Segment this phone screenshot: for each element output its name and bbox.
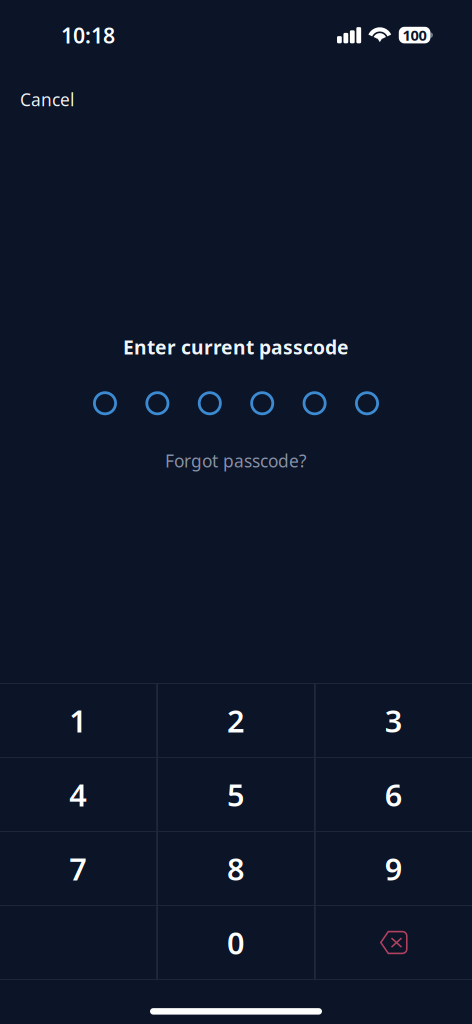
button[interactable]: 4 [0,758,156,831]
button[interactable]: 3 [316,684,472,757]
button[interactable]: 9 [316,832,472,905]
staticText: 0 [227,922,245,963]
staticText: 8 [227,848,245,889]
staticText: 3 [385,700,403,741]
button[interactable]: 1 [0,684,156,757]
button[interactable]: 6 [316,758,472,831]
staticText: 1 [69,700,87,741]
staticText: 100 [403,25,427,45]
staticText: Cancel [20,88,74,111]
button[interactable]: 7 [0,832,156,905]
staticText: Enter current passcode [123,334,349,360]
button[interactable]: Cancel [20,88,74,111]
button[interactable]: 2 [158,684,314,757]
staticText: 5 [227,774,245,815]
button[interactable]: 0 [158,906,314,979]
staticText: Forgot passcode? [165,449,307,472]
staticText: 10:18 [61,21,115,49]
button[interactable]: 5 [158,758,314,831]
button[interactable]: Forgot passcode? [165,449,307,472]
staticText: 9 [385,848,403,889]
staticText: 6 [385,774,403,815]
button[interactable]: Delete [316,906,472,979]
staticText: 7 [69,848,87,889]
staticText: 2 [227,700,245,741]
button[interactable]: 8 [158,832,314,905]
staticText: 4 [69,774,87,815]
